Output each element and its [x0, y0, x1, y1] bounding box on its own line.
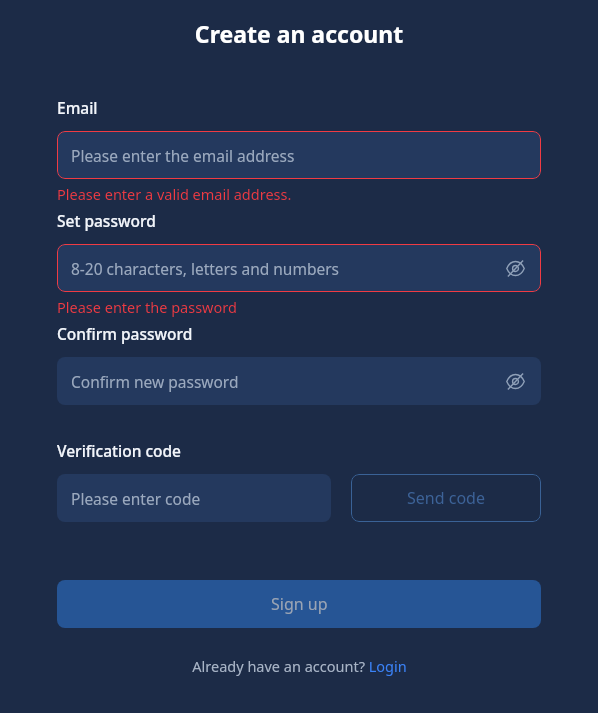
staticText: Set password	[57, 210, 156, 231]
staticText: 8-20 characters, letters and numbers	[71, 258, 503, 279]
button[interactable]: Show confirm password	[503, 369, 527, 393]
button[interactable]: Confirm new password	[57, 357, 541, 405]
staticText: Please enter a valid email address.	[57, 184, 292, 204]
staticText: Create an account	[57, 18, 541, 49]
staticText: Send code	[407, 487, 485, 509]
button[interactable]: 8-20 characters, letters and numbers	[57, 244, 541, 292]
staticText: Please enter the password	[57, 297, 237, 317]
staticText: Please enter the email address	[71, 145, 527, 166]
staticText: Sign up	[271, 593, 328, 615]
button[interactable]: Please enter code	[57, 474, 331, 522]
button[interactable]: Already have an account? Login	[57, 656, 541, 676]
button[interactable]: Show password	[503, 256, 527, 280]
staticText: Already have an account? Login	[192, 656, 407, 676]
staticText: Please enter code	[71, 488, 317, 509]
button[interactable]: Send code	[351, 474, 541, 522]
staticText: Email	[57, 97, 98, 118]
button[interactable]: Please enter the email address	[57, 131, 541, 179]
staticText: Confirm password	[57, 323, 193, 344]
button[interactable]: Sign up	[57, 580, 541, 628]
staticText: Verification code	[57, 440, 181, 461]
staticText: Confirm new password	[71, 371, 503, 392]
